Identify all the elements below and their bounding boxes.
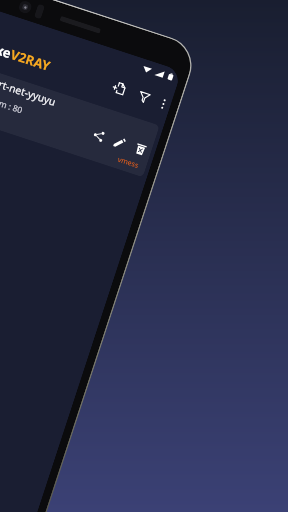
staticText: V2RAY: [8, 45, 53, 75]
staticText: de-frankfurt-net-yyuyu: [0, 61, 58, 109]
button[interactable]: Share: [84, 121, 112, 149]
button[interactable]: Add config: [103, 72, 136, 105]
button[interactable]: de-frankfurt-net-yyuyu: [0, 55, 160, 177]
button[interactable]: Delete: [126, 135, 154, 163]
staticText: vmess: [117, 154, 140, 170]
button[interactable]: Edit: [105, 128, 133, 156]
button[interactable]: More options: [154, 94, 173, 113]
staticText: Deluxe: [0, 31, 14, 62]
button[interactable]: Filter: [127, 80, 160, 113]
staticText: www.sdfsdf.com : 80: [0, 79, 24, 116]
